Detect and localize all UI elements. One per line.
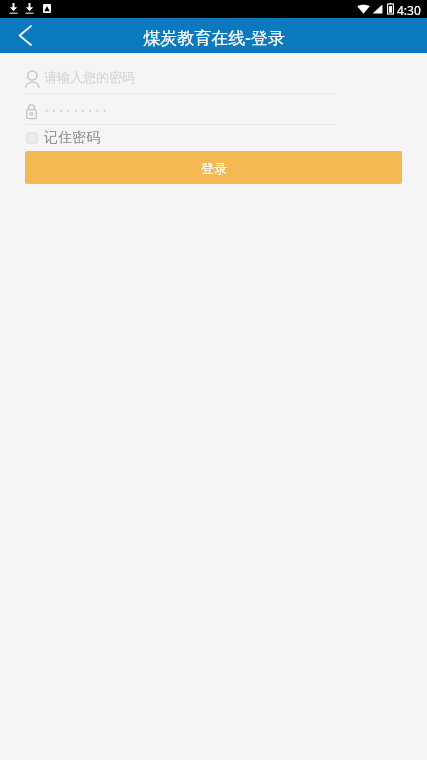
staticText: 记住密码 (44, 129, 100, 147)
button[interactable]: 记住密码 (27, 129, 100, 147)
staticText: 4:30 (397, 2, 421, 18)
button[interactable]: 登录 (25, 151, 402, 184)
staticText: 登录 (201, 160, 227, 176)
staticText: 煤炭教育在线-登录 (143, 26, 285, 49)
button[interactable]: Back (0, 18, 44, 53)
staticText: 请输入您的密码 (44, 69, 135, 85)
